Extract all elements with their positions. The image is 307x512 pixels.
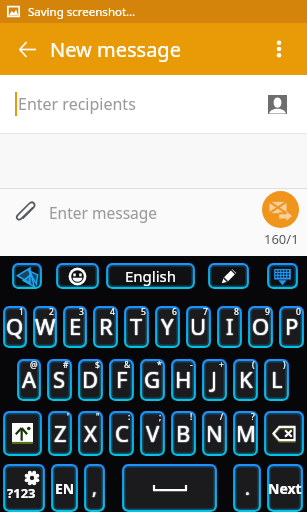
staticText: A <box>23 364 38 394</box>
staticText: ; <box>159 411 162 423</box>
button[interactable]: J <box>202 359 227 401</box>
button[interactable]: Space <box>122 464 217 512</box>
staticText: A <box>22 364 37 394</box>
staticText: 6 <box>172 306 177 318</box>
button[interactable]: B <box>171 411 196 456</box>
button[interactable]: . <box>233 464 261 512</box>
button[interactable]: A <box>17 359 41 401</box>
staticText: - <box>190 359 193 371</box>
staticText: ) <box>283 359 286 371</box>
staticText: G <box>145 364 162 394</box>
button[interactable]: F <box>109 359 134 401</box>
button[interactable]: Pick contact <box>255 82 299 126</box>
button[interactable]: Hide keyboard <box>267 263 298 289</box>
button[interactable]: I <box>217 306 242 348</box>
staticText: X <box>84 418 97 448</box>
staticText: J <box>211 365 218 395</box>
staticText: 160/1 <box>264 230 299 248</box>
staticText: T <box>130 310 143 340</box>
button[interactable]: Symbols <box>3 464 45 512</box>
staticText: V <box>146 419 160 449</box>
staticText: S <box>54 364 67 394</box>
button[interactable]: W <box>33 306 57 348</box>
staticText: H <box>174 364 191 394</box>
staticText: E <box>69 312 82 342</box>
staticText: P <box>286 311 300 341</box>
staticText: T <box>130 312 143 342</box>
button[interactable]: Next <box>267 464 303 512</box>
staticText: ?123 <box>7 484 36 502</box>
button[interactable]: K <box>233 359 258 401</box>
staticText: N <box>205 418 222 448</box>
staticText: X <box>85 418 98 448</box>
button[interactable]: D <box>78 359 103 401</box>
button[interactable]: V <box>140 411 165 456</box>
button[interactable]: English <box>106 263 195 289</box>
button[interactable]: Attach <box>8 194 42 228</box>
button[interactable]: Shift <box>3 411 42 456</box>
staticText: S <box>52 364 65 394</box>
staticText: 8 <box>234 306 239 318</box>
button[interactable]: L <box>264 359 289 401</box>
staticText: U <box>190 311 207 341</box>
button[interactable]: Voice input <box>12 263 42 289</box>
staticText: N <box>206 418 223 448</box>
staticText: P <box>284 311 298 341</box>
button[interactable]: , <box>84 464 105 512</box>
staticText: 9 <box>265 306 270 318</box>
button[interactable]: M <box>233 411 258 456</box>
staticText: J <box>212 364 219 394</box>
staticText: X <box>84 419 97 449</box>
staticText: . <box>246 476 251 501</box>
staticText: 5 <box>141 306 146 318</box>
staticText: / <box>220 411 224 423</box>
button[interactable]: N <box>202 411 227 456</box>
staticText: K <box>239 365 253 395</box>
button[interactable]: G <box>140 359 165 401</box>
staticText: G <box>143 364 160 394</box>
staticText: O <box>252 310 270 340</box>
staticText: D <box>81 364 98 394</box>
staticText: C <box>115 418 129 448</box>
staticText: P <box>285 311 299 341</box>
staticText: 7 <box>203 306 208 318</box>
staticText: X <box>84 417 97 447</box>
button[interactable]: E <box>63 306 87 348</box>
button[interactable]: P <box>279 306 304 348</box>
staticText: U <box>190 310 207 340</box>
staticText: J <box>211 364 218 394</box>
staticText: A <box>21 364 36 394</box>
staticText: C <box>114 418 128 448</box>
staticText: , <box>93 476 98 501</box>
staticText: ( <box>252 359 255 371</box>
staticText: 4 <box>110 306 115 318</box>
button[interactable]: X <box>78 411 103 456</box>
button[interactable]: C <box>109 411 134 456</box>
button[interactable]: Language <box>51 464 78 512</box>
button[interactable]: Handwriting <box>208 263 249 289</box>
button[interactable]: T <box>124 306 149 348</box>
button[interactable]: S <box>47 359 72 401</box>
staticText: R <box>99 312 113 342</box>
staticText: M <box>236 418 256 448</box>
staticText: 3 <box>79 306 84 318</box>
button[interactable]: Backspace <box>264 411 304 456</box>
staticText: Q <box>6 312 24 342</box>
staticText: . <box>244 476 249 501</box>
button[interactable]: H <box>171 359 196 401</box>
button[interactable]: O <box>248 306 273 348</box>
staticText: D <box>82 365 99 395</box>
button[interactable]: Y <box>155 306 180 348</box>
button[interactable]: Z <box>48 411 72 456</box>
staticText: K <box>239 363 253 393</box>
staticText: B <box>176 418 191 448</box>
button[interactable]: Send <box>262 191 299 228</box>
button[interactable]: More options <box>262 32 296 66</box>
button[interactable]: Emoji <box>56 263 99 289</box>
staticText: , <box>92 477 97 502</box>
button[interactable]: Q <box>3 306 27 348</box>
button[interactable]: Back <box>9 31 45 67</box>
staticText: EN <box>55 479 75 498</box>
button[interactable]: U <box>186 306 211 348</box>
button[interactable]: R <box>93 306 118 348</box>
